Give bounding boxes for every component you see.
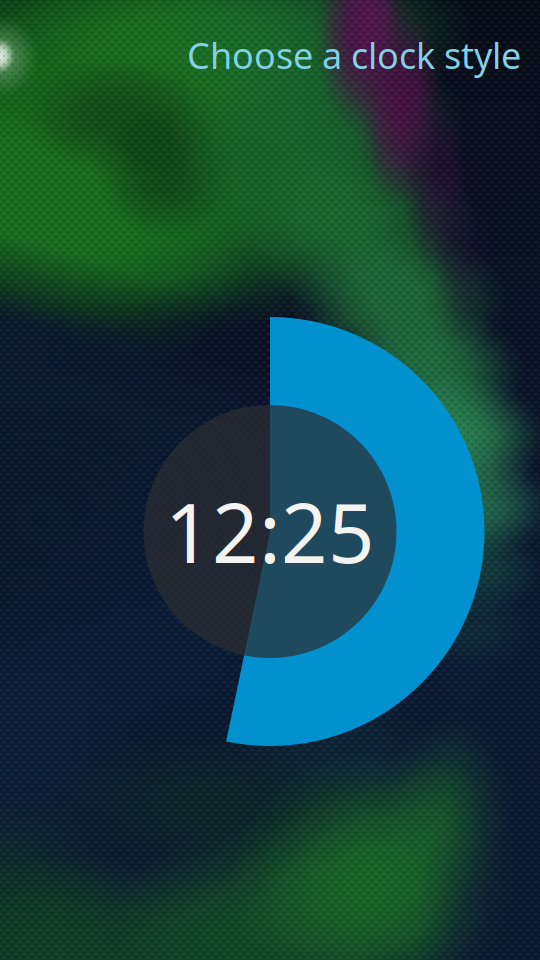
- staticText: Choose a clock style: [187, 31, 521, 79]
- staticText: 12:25: [165, 477, 375, 585]
- button[interactable]: 12:25: [0, 0, 540, 960]
